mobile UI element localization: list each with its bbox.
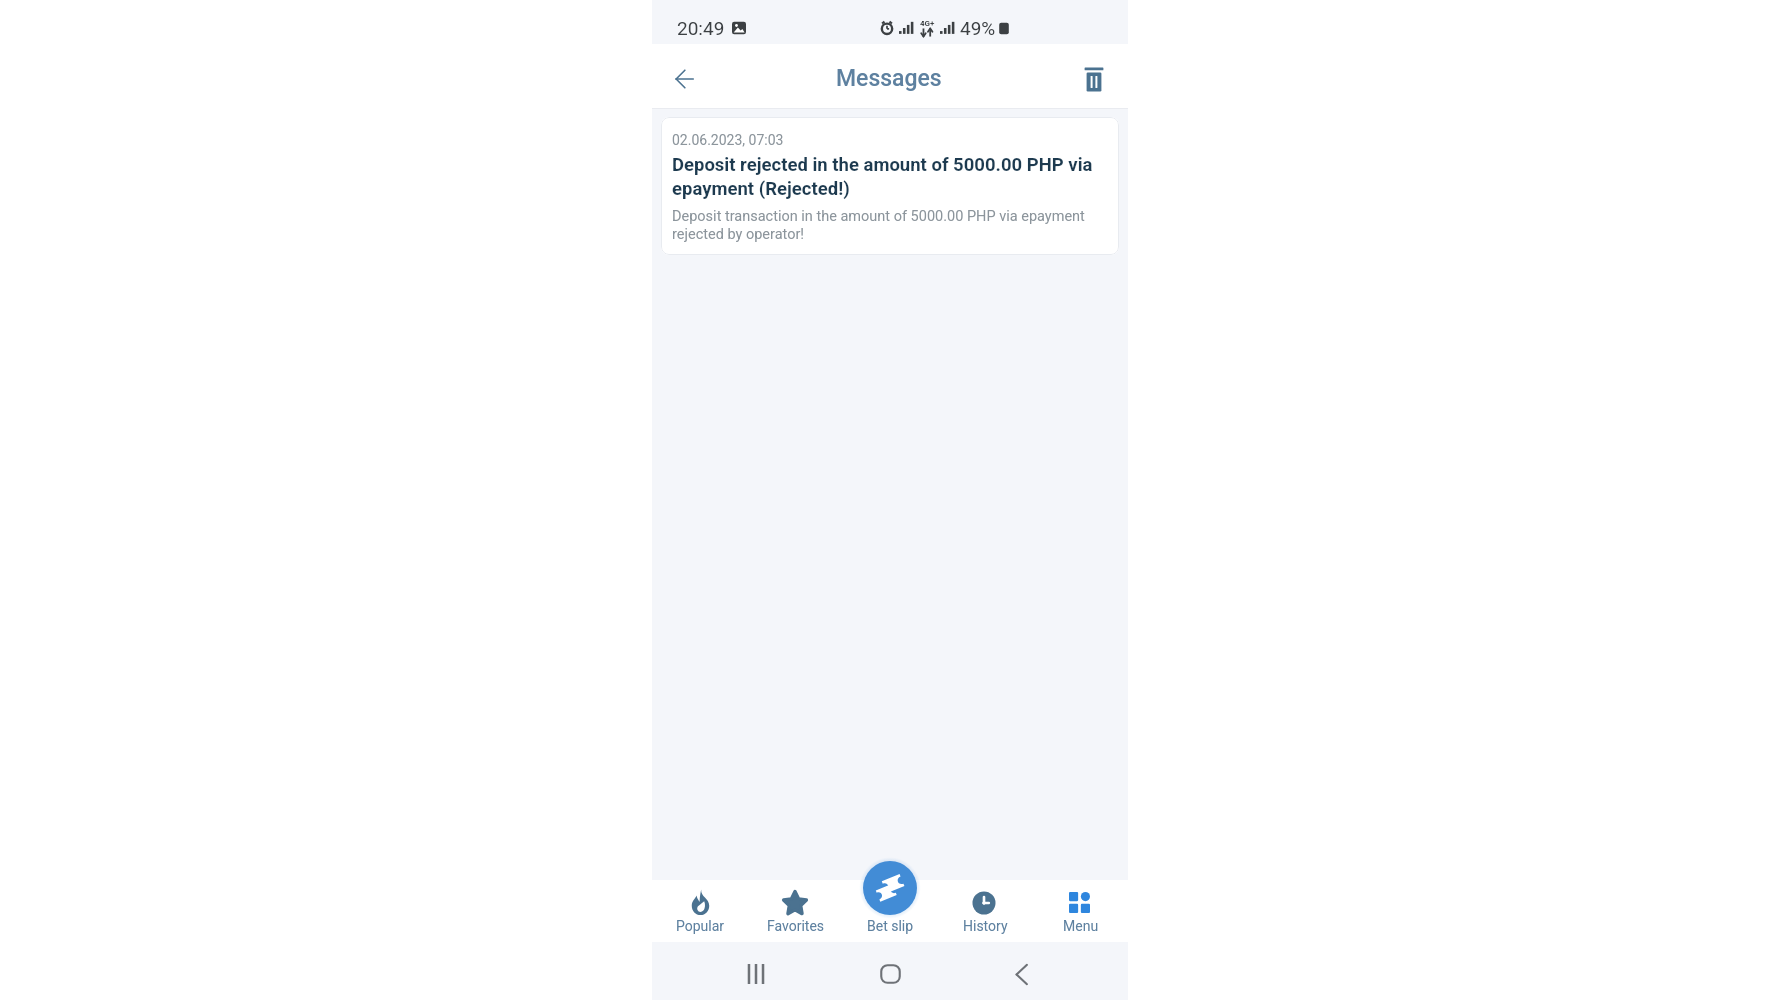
button[interactable]: Delete all messages bbox=[1072, 57, 1116, 101]
staticText: Popular bbox=[676, 918, 725, 934]
staticText: History bbox=[963, 918, 1008, 934]
button[interactable]: Bet slip bbox=[857, 855, 923, 921]
staticText: 49% bbox=[960, 17, 996, 39]
button[interactable]: Favorites bbox=[748, 880, 843, 942]
staticText: Menu bbox=[1063, 918, 1099, 934]
staticText: Bet slip bbox=[867, 918, 914, 934]
button[interactable]: Menu bbox=[1033, 880, 1128, 942]
staticText: Messages bbox=[836, 65, 942, 92]
button[interactable]: History bbox=[938, 880, 1033, 942]
button[interactable]: Bet slip bbox=[843, 880, 938, 942]
staticText: Deposit transaction in the amount of 500… bbox=[672, 208, 1108, 243]
button[interactable]: Popular bbox=[652, 880, 748, 942]
button[interactable]: 02.06.2023, 07:03 bbox=[661, 117, 1119, 255]
button[interactable]: Home bbox=[861, 942, 919, 1000]
button[interactable]: Back bbox=[662, 57, 706, 101]
button[interactable]: Back bbox=[993, 942, 1049, 1000]
button[interactable]: Recents bbox=[728, 942, 784, 1000]
staticText: 02.06.2023, 07:03 bbox=[672, 132, 784, 148]
staticText: 4G+ bbox=[920, 19, 935, 28]
staticText: 20:49 bbox=[677, 17, 725, 39]
staticText: Favorites bbox=[767, 918, 825, 934]
staticText: Deposit rejected in the amount of 5000.0… bbox=[672, 154, 1108, 200]
